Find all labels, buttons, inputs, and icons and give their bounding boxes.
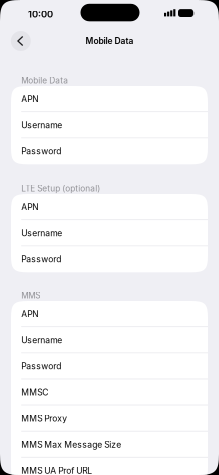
button[interactable]: APN [11, 301, 208, 327]
staticText: Username [21, 335, 62, 345]
staticText: Username [21, 120, 62, 130]
staticText: MMS Max Message Size [21, 439, 121, 450]
staticText: APN [21, 309, 38, 319]
staticText: Username [21, 228, 62, 238]
staticText: LTE Setup (optional) [21, 183, 100, 193]
button[interactable]: MMS UA Prof URL [11, 458, 208, 475]
staticText: Mobile Data [21, 75, 68, 85]
button[interactable]: APN [11, 86, 208, 112]
staticText: APN [21, 202, 38, 212]
staticText: Password [21, 146, 61, 156]
button[interactable]: Username [11, 112, 208, 138]
button[interactable]: MMSC [11, 379, 208, 405]
button[interactable]: Password [11, 353, 208, 379]
button[interactable]: Username [11, 220, 208, 246]
button[interactable]: MMS Proxy [11, 405, 208, 431]
staticText: Mobile Data [85, 36, 133, 46]
button[interactable]: Username [11, 327, 208, 353]
staticText: MMS Proxy [21, 413, 67, 424]
staticText: Password [21, 254, 61, 264]
staticText: Password [21, 361, 61, 371]
button[interactable]: Password [11, 138, 208, 164]
staticText: MMS [21, 290, 40, 300]
button[interactable]: APN [11, 194, 208, 220]
staticText: APN [21, 94, 38, 104]
button[interactable]: Password [11, 246, 208, 272]
staticText: MMSC [21, 387, 48, 397]
button[interactable]: Back [11, 31, 31, 51]
staticText: 10:00 [28, 9, 53, 20]
button[interactable]: MMS Max Message Size [11, 431, 208, 458]
staticText: MMS UA Prof URL [21, 465, 92, 475]
